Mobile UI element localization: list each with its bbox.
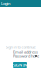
staticText: Email address <box>13 49 38 55</box>
staticText: Password here <box>13 53 39 59</box>
button[interactable]: SIGN IN <box>13 62 27 68</box>
staticText: Sign in to continue <box>5 44 35 50</box>
staticText: SIGN IN <box>13 62 27 68</box>
staticText: Login <box>1 1 11 6</box>
